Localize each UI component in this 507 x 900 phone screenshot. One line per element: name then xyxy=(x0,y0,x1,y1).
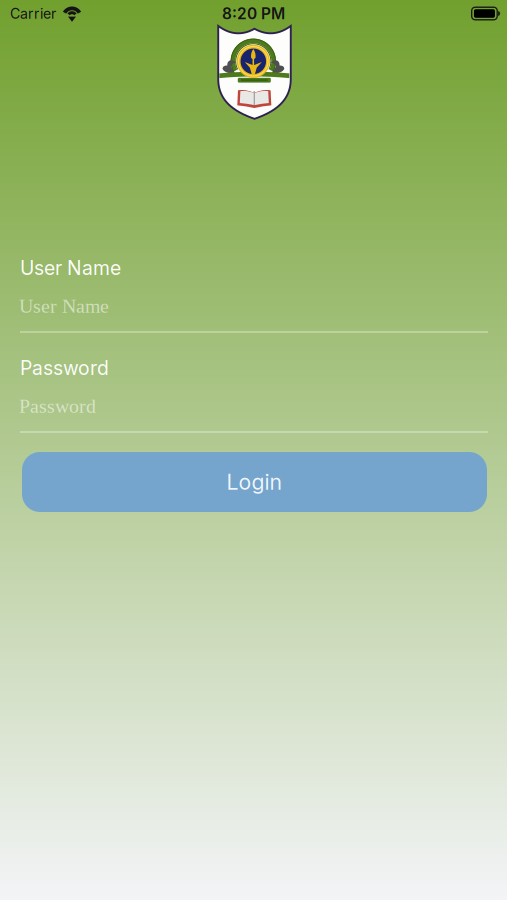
staticText: Login xyxy=(226,469,282,495)
staticText: Carrier xyxy=(10,5,56,22)
staticText: User Name xyxy=(19,295,109,317)
staticText: User Name xyxy=(20,256,121,280)
button[interactable]: Login xyxy=(22,452,487,512)
staticText: 8:20 PM xyxy=(222,4,285,23)
staticText: Password xyxy=(19,395,96,417)
staticText: Password xyxy=(20,356,109,380)
